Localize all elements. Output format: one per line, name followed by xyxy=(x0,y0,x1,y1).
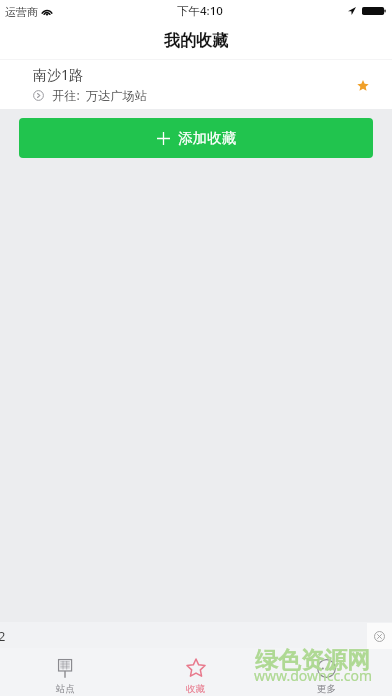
staticText: 2 xyxy=(0,627,6,645)
staticText: 运营商 xyxy=(5,5,38,19)
button[interactable]: Close xyxy=(367,623,392,649)
staticText: 开往: 万达广场站 xyxy=(52,87,147,104)
staticText: www.downcc.com xyxy=(254,666,373,685)
staticText: 更多 xyxy=(317,683,336,695)
staticText: 南沙1路 xyxy=(33,65,84,84)
staticText: 我的收藏 xyxy=(164,31,228,51)
button[interactable]: 添加收藏 xyxy=(19,118,373,158)
staticText: 收藏 xyxy=(186,683,205,695)
staticText: 添加收藏 xyxy=(178,129,236,147)
button[interactable]: 南沙1路 xyxy=(0,60,392,109)
button[interactable]: 站点 xyxy=(0,648,130,696)
staticText: 绿色资源网 xyxy=(255,646,370,675)
staticText: 站点 xyxy=(56,683,75,695)
button[interactable]: 收藏 xyxy=(130,648,261,696)
staticText: 下午4:10 xyxy=(177,3,223,19)
button[interactable]: 更多 xyxy=(261,648,392,696)
